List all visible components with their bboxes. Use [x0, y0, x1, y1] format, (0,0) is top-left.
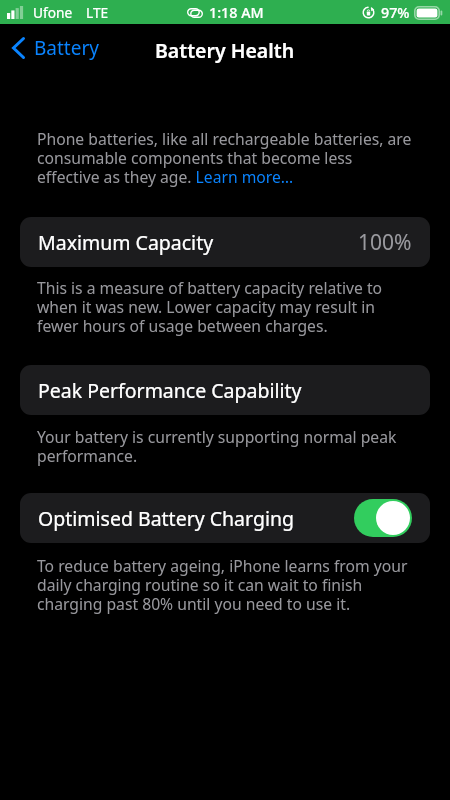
staticText: Maximum Capacity — [38, 229, 214, 256]
staticText: Optimised Battery Charging — [38, 505, 294, 532]
button[interactable]: Optimised Battery Charging — [20, 493, 430, 543]
staticText: Battery — [34, 35, 99, 61]
staticText: LTE — [86, 3, 109, 22]
staticText: Peak Performance Capability — [38, 377, 302, 404]
staticText: 97% — [381, 3, 410, 22]
staticText: Your battery is currently supporting nor… — [37, 426, 416, 466]
button[interactable]: Battery — [6, 30, 105, 66]
staticText: Ufone — [33, 3, 73, 22]
staticText: 100% — [358, 228, 412, 257]
button[interactable]: Peak Performance Capability — [20, 365, 430, 415]
staticText: To reduce battery ageing, iPhone learns … — [37, 555, 416, 614]
staticText: This is a measure of battery capacity re… — [37, 277, 416, 336]
staticText: Battery Health — [155, 37, 295, 64]
staticText: 1:18 AM — [209, 3, 264, 22]
button[interactable]: Maximum Capacity — [20, 217, 430, 267]
staticText: Phone batteries, like all rechargeable b… — [37, 128, 416, 187]
button[interactable]: Optimised Battery Charging toggle — [354, 499, 412, 537]
